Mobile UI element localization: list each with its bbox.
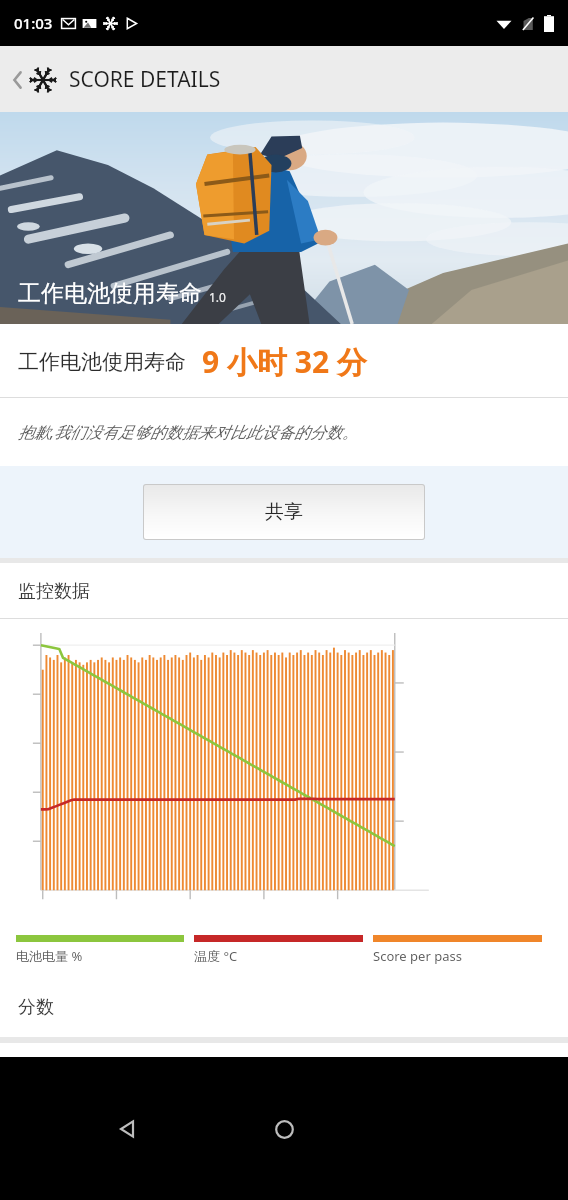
staticText: 监控数据 [18, 580, 90, 603]
staticText: 工作电池使用寿命 [18, 279, 202, 308]
button[interactable]: 共享 [144, 485, 424, 539]
staticText: 9 小时 32 分 [202, 341, 367, 382]
button[interactable]: Back [100, 1101, 156, 1157]
button[interactable]: Home [256, 1101, 312, 1157]
staticText: 01:03 [14, 13, 53, 33]
staticText: 电池电量 % [16, 947, 83, 965]
staticText: 分数 [18, 996, 54, 1019]
button[interactable]: Back to Score Details [0, 46, 568, 112]
staticText: 工作电池使用寿命 [18, 349, 186, 375]
staticText: 温度 °C [194, 947, 238, 965]
staticText: Score per pass [373, 947, 462, 965]
staticText: 1.0 [209, 289, 226, 305]
staticText: 抱歉,我们没有足够的数据来对比此设备的分数。 [18, 421, 359, 443]
staticText: SCORE DETAILS [69, 65, 221, 94]
staticText: 共享 [265, 500, 303, 524]
